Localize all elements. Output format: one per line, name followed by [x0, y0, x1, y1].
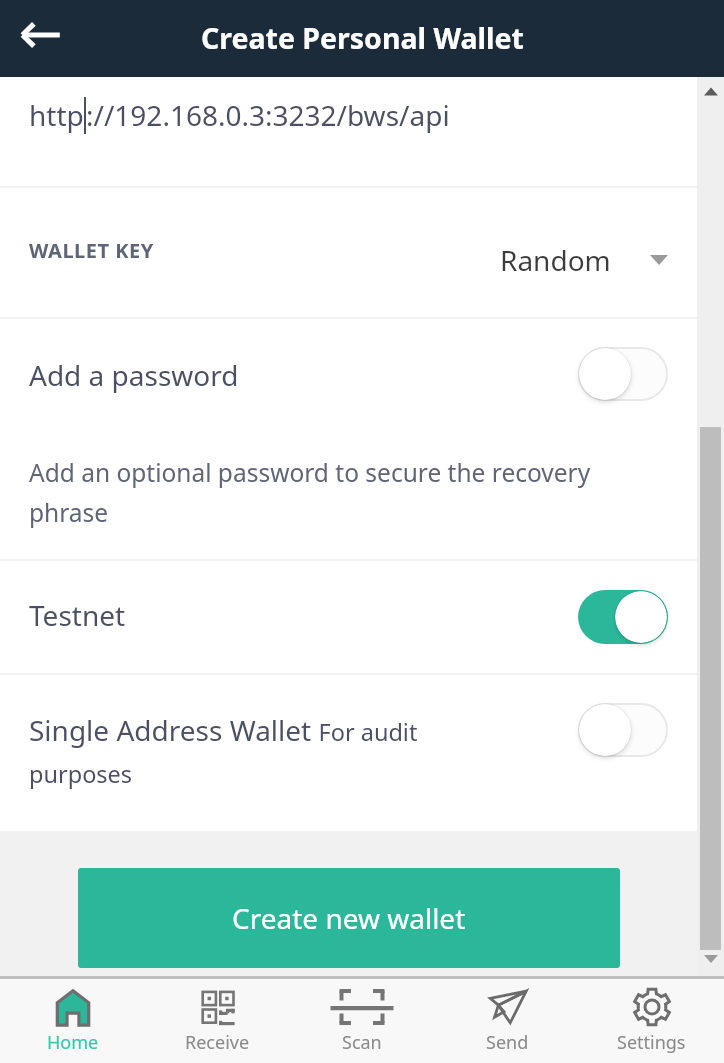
staticText: Add a password — [29, 356, 239, 394]
button[interactable]: Create new wallet — [78, 868, 620, 968]
staticText: Send — [486, 1030, 529, 1055]
button[interactable]: Back — [12, 5, 72, 65]
staticText: Create Personal Wallet — [201, 19, 524, 58]
button[interactable]: Receive — [145, 979, 289, 1063]
button[interactable]: Settings — [579, 979, 723, 1063]
staticText: Receive — [185, 1030, 250, 1055]
button[interactable]: Scan — [290, 979, 434, 1063]
button[interactable] — [578, 347, 668, 401]
button[interactable]: Send — [435, 979, 579, 1063]
staticText: Home — [47, 1030, 99, 1055]
button[interactable]: Random — [500, 241, 668, 279]
staticText: Scan — [342, 1030, 382, 1055]
staticText: Create new wallet — [232, 899, 466, 937]
button[interactable] — [578, 590, 668, 644]
staticText: ://192.168.0.3:3232/bws/api — [86, 96, 450, 134]
staticText: Testnet — [29, 596, 126, 634]
button[interactable] — [578, 703, 668, 757]
staticText: Add an optional password to secure the r… — [29, 456, 639, 529]
staticText: Random — [500, 241, 611, 279]
staticText: WALLET KEY — [29, 237, 154, 264]
staticText: Single Address Wallet For audit purposes — [29, 711, 429, 790]
button[interactable]: Home — [1, 979, 145, 1063]
staticText: http — [29, 96, 84, 134]
staticText: Settings — [617, 1030, 686, 1055]
